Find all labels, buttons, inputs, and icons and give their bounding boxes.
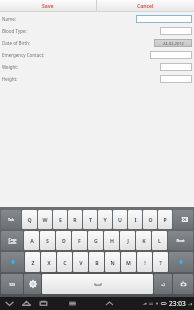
staticText: M: [126, 259, 131, 266]
button[interactable]: Cancel: [97, 0, 194, 12]
staticText: W: [42, 216, 48, 223]
staticText: 24-02-2012: [163, 41, 184, 46]
button[interactable]: 24-02-2012: [154, 39, 192, 47]
staticText: H: [110, 237, 114, 244]
button[interactable]: Q: [22, 210, 37, 229]
button[interactable]: Back: [4, 298, 15, 309]
button[interactable]: J: [120, 231, 135, 250]
button[interactable]: W: [38, 210, 52, 229]
staticText: J: [127, 237, 129, 244]
staticText: K: [142, 237, 146, 244]
button[interactable]: O: [143, 210, 157, 229]
button[interactable]: A: [24, 231, 39, 250]
button[interactable]: T: [83, 210, 97, 229]
button[interactable]: Y: [98, 210, 112, 229]
button[interactable]: N: [105, 252, 120, 272]
button[interactable]: Shift: [169, 252, 193, 272]
button[interactable]: Voice input: [173, 274, 193, 294]
staticText: Z: [31, 259, 35, 266]
button[interactable]: [160, 63, 192, 71]
staticText: L: [158, 237, 161, 244]
staticText: E: [59, 216, 62, 223]
staticText: Cancel: [137, 3, 154, 10]
button[interactable]: 123: [1, 274, 23, 294]
button[interactable]: Shift: [1, 252, 24, 272]
staticText: Weight:: [2, 64, 19, 70]
staticText: B: [95, 259, 99, 266]
button[interactable]: K: [136, 231, 151, 250]
staticText: 23:03: [169, 299, 186, 308]
staticText: P: [163, 216, 167, 223]
staticText: Date of Birth:: [2, 40, 31, 46]
staticText: A: [30, 237, 34, 244]
button[interactable]: Caps Lock: [1, 231, 23, 250]
staticText: Next: [176, 238, 185, 243]
button[interactable]: B: [89, 252, 104, 272]
staticText: Q: [27, 216, 32, 223]
staticText: T: [89, 216, 92, 223]
staticText: V: [79, 259, 83, 266]
button[interactable]: S: [40, 231, 55, 250]
button[interactable]: Home: [21, 298, 32, 309]
staticText: D: [62, 237, 66, 244]
button[interactable]: C: [57, 252, 72, 272]
button[interactable]: D: [56, 231, 71, 250]
button[interactable]: [136, 15, 192, 23]
staticText: ?: [159, 259, 162, 266]
staticText: Caps Lock: [8, 237, 17, 245]
staticText: Emergency Contact:: [2, 52, 45, 58]
button[interactable]: !: [137, 252, 152, 272]
staticText: !: [144, 259, 146, 266]
button[interactable]: G: [88, 231, 103, 250]
staticText: C: [63, 259, 67, 266]
button[interactable]: Menu: [67, 298, 78, 309]
button[interactable]: E: [53, 210, 67, 229]
staticText: Y: [103, 216, 107, 223]
button[interactable]: L: [152, 231, 167, 250]
button[interactable]: [160, 27, 192, 35]
staticText: F: [78, 237, 81, 244]
button[interactable]: Backspace: [173, 210, 193, 229]
staticText: Blood Type:: [2, 28, 27, 34]
staticText: Height:: [2, 76, 18, 82]
button[interactable]: [150, 51, 192, 59]
button[interactable]: ?: [153, 252, 168, 272]
button[interactable]: :-): [154, 274, 172, 294]
staticText: :-): [161, 282, 165, 287]
button[interactable]: [160, 75, 192, 83]
staticText: 123: [9, 282, 15, 287]
button[interactable]: Save: [0, 0, 96, 12]
staticText: X: [47, 259, 51, 266]
button[interactable]: Z: [25, 252, 40, 272]
staticText: U: [118, 216, 122, 223]
staticText: S: [46, 237, 49, 244]
button[interactable]: Space: [42, 274, 153, 294]
staticText: Save: [42, 3, 54, 10]
button[interactable]: P: [158, 210, 172, 229]
button[interactable]: R: [68, 210, 82, 229]
staticText: Name:: [2, 16, 16, 22]
button[interactable]: H: [104, 231, 119, 250]
button[interactable]: Tab: [1, 210, 21, 229]
button[interactable]: V: [73, 252, 88, 272]
button[interactable]: F: [72, 231, 87, 250]
button[interactable]: Next: [168, 231, 193, 250]
staticText: O: [148, 216, 153, 223]
staticText: N: [110, 259, 115, 266]
button[interactable]: Recents: [38, 298, 49, 309]
staticText: Tab: [8, 217, 14, 222]
button[interactable]: Keyboard settings: [24, 274, 41, 294]
button[interactable]: X: [41, 252, 56, 272]
button[interactable]: U: [113, 210, 127, 229]
button[interactable]: I: [128, 210, 142, 229]
button[interactable]: Hide keyboard: [104, 298, 115, 309]
staticText: I: [134, 216, 137, 223]
staticText: R: [73, 216, 77, 223]
staticText: G: [94, 237, 98, 244]
button[interactable]: M: [121, 252, 136, 272]
